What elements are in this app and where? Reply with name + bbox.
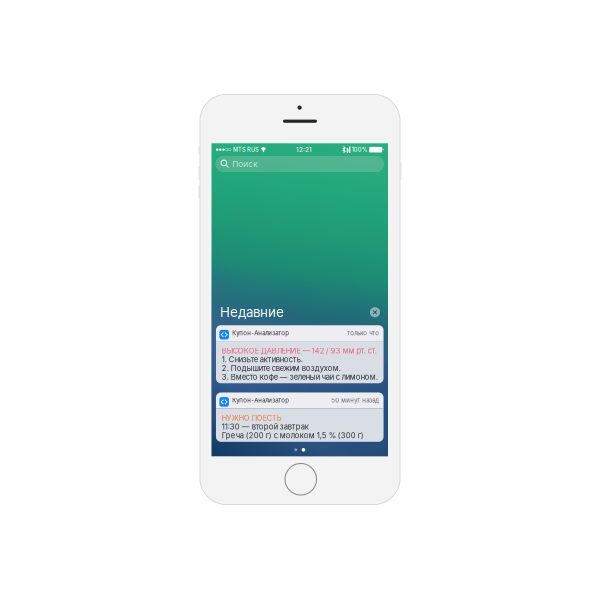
staticText: НУЖНО ПОЕСТЬ bbox=[222, 414, 282, 422]
staticText: 50 минут назад bbox=[331, 397, 379, 404]
staticText: 2. Подышите свежим воздухом. bbox=[222, 364, 341, 372]
staticText: 100% bbox=[352, 146, 368, 153]
staticText: Купон-Анализатор bbox=[232, 397, 289, 404]
staticText: Купон-Анализатор bbox=[232, 329, 289, 337]
staticText: Недавние bbox=[220, 304, 284, 320]
button[interactable]: Clear notifications bbox=[370, 307, 380, 317]
staticText: 1. Снизьте активность. bbox=[222, 355, 303, 364]
staticText: ВЫСОКОЕ ДАВЛЕНИЕ — 142 / 93 мм рт. ст. bbox=[222, 347, 377, 355]
button[interactable]: Купон-Анализатор bbox=[216, 392, 383, 442]
staticText: 12:21 bbox=[296, 146, 312, 153]
staticText: Поиск bbox=[232, 159, 257, 169]
staticText: Греча (200 г) с молоком 1,5 % (300 г) bbox=[222, 431, 364, 440]
staticText: 3. Вместо кофе — зеленый чай с лимоном. bbox=[222, 373, 378, 381]
staticText: 11:30 — второй завтрак bbox=[222, 422, 309, 431]
staticText: только что bbox=[347, 329, 379, 337]
button[interactable]: Поиск bbox=[215, 156, 384, 172]
button[interactable]: Купон-Анализатор bbox=[216, 325, 383, 383]
staticText: MTS RUS bbox=[233, 146, 259, 153]
